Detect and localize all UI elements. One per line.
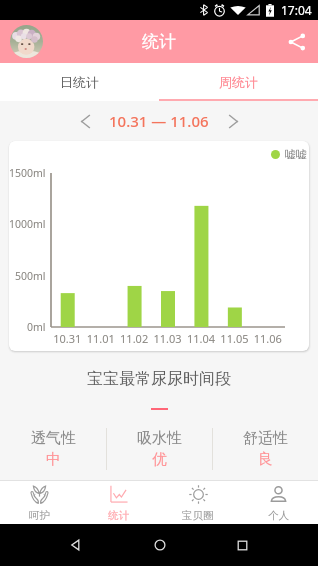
staticText: 吸水性 <box>137 429 182 448</box>
staticText: 优 <box>152 450 167 469</box>
staticText: 宝宝最常尿尿时间段 <box>87 369 231 389</box>
button[interactable]: Share <box>275 20 318 63</box>
staticText: 透气性 <box>31 429 76 448</box>
staticText: 良 <box>258 450 273 469</box>
staticText: 10.31 — 11.06 <box>109 111 209 131</box>
button[interactable]: 透气性 <box>0 428 106 470</box>
button[interactable]: 个人 <box>238 481 318 524</box>
staticText: 宝贝圈 <box>182 509 214 522</box>
button[interactable]: 统计 <box>79 481 158 524</box>
button[interactable]: 周统计 <box>159 63 318 101</box>
staticText: 中 <box>46 450 61 469</box>
staticText: 统计 <box>108 509 129 522</box>
button[interactable]: Previous week <box>71 107 99 135</box>
button[interactable]: 日统计 <box>0 63 159 101</box>
staticText: 嘘嘘 <box>285 147 307 161</box>
staticText: 17:04 <box>281 2 312 18</box>
staticText: 周统计 <box>219 74 258 90</box>
button[interactable]: 宝贝圈 <box>158 481 238 524</box>
button[interactable]: 吸水性 <box>107 428 212 470</box>
button[interactable]: Profile <box>10 25 43 58</box>
staticText: 舒适性 <box>243 429 288 448</box>
button[interactable]: 舒适性 <box>213 428 318 470</box>
staticText: 统计 <box>142 31 176 52</box>
button[interactable]: Next week <box>219 107 247 135</box>
staticText: 日统计 <box>60 74 99 90</box>
staticText: 个人 <box>268 509 289 522</box>
staticText: 呵护 <box>29 509 50 522</box>
button[interactable]: 呵护 <box>0 481 79 524</box>
